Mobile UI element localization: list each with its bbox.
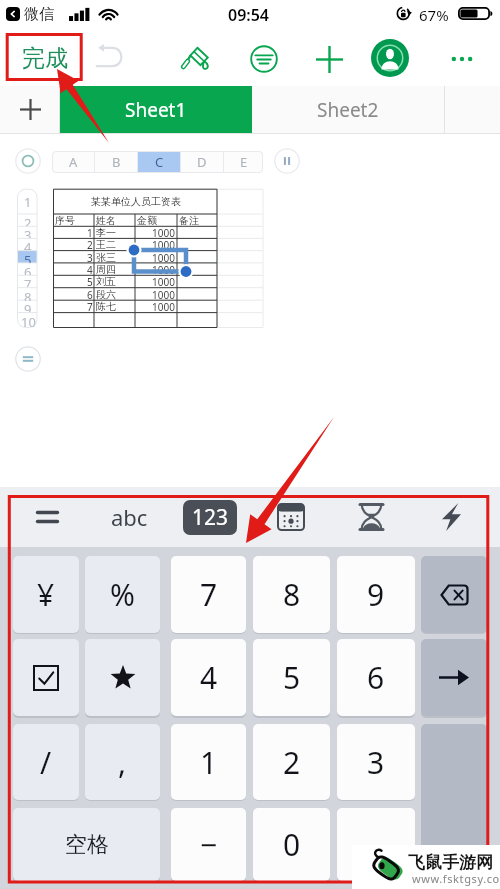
button[interactable]: 完成 (12, 38, 77, 78)
staticText: 9 (24, 300, 32, 312)
staticText: 序号 (55, 214, 75, 226)
button[interactable]: 7 (171, 556, 246, 633)
button[interactable] (85, 639, 160, 716)
staticText: Sheet1 (125, 97, 187, 123)
staticText: 姓名 (96, 214, 116, 226)
staticText: 1000 (152, 238, 175, 250)
button[interactable]: Formula (15, 346, 41, 372)
button[interactable]: 空格 (13, 808, 160, 881)
button[interactable]: 123 (183, 500, 237, 535)
staticText: 67% (419, 5, 449, 25)
button[interactable]: 8 (253, 556, 330, 633)
button[interactable]: Record (15, 148, 41, 174)
staticText: 3 (87, 251, 93, 263)
staticText: − (200, 824, 218, 865)
button[interactable]: A (52, 151, 94, 173)
staticText: 金额 (137, 214, 157, 226)
staticText: 2 (24, 214, 32, 226)
button[interactable]: Sheet1 (60, 86, 252, 134)
staticText: 1000 (152, 263, 175, 275)
staticText: 1000 (152, 300, 175, 312)
button[interactable]: Format painter (178, 41, 214, 77)
staticText: 6 (87, 288, 93, 301)
button[interactable] (13, 639, 79, 716)
button[interactable]: Numeric pad (265, 494, 317, 540)
staticText: ¥ (37, 574, 55, 615)
button[interactable]: / (13, 724, 79, 800)
button[interactable]: More options (445, 42, 479, 76)
button[interactable] (421, 639, 487, 716)
staticText: 1000 (152, 288, 175, 301)
staticText: 李一 (96, 226, 116, 238)
staticText: 备注 (179, 214, 199, 226)
button[interactable]: Pause (274, 148, 300, 174)
button[interactable]: Quick actions (428, 494, 474, 540)
staticText: 8 (24, 288, 32, 301)
staticText: 3 (24, 226, 32, 238)
staticText: 6 (24, 263, 32, 275)
staticText: 陈七 (96, 300, 116, 312)
button[interactable]: 5 (253, 639, 330, 716)
staticText: 8 (283, 574, 301, 615)
staticText: 空格 (65, 831, 109, 859)
staticText: % (110, 574, 135, 615)
button[interactable]: Sheet2 (252, 86, 444, 134)
staticText: 10 (21, 313, 36, 328)
button[interactable]: − (171, 808, 246, 881)
button[interactable] (421, 724, 487, 881)
staticText: 9 (367, 574, 385, 615)
button[interactable]: . (337, 808, 415, 881)
button[interactable]: 2 (253, 724, 330, 800)
button[interactable]: C (138, 151, 180, 173)
staticText: 1 (200, 742, 218, 783)
staticText: 5 (283, 657, 301, 698)
button[interactable]: ¥ (13, 556, 79, 633)
staticText: 刘五 (96, 275, 116, 287)
staticText: 微信 (24, 5, 54, 24)
staticText: 2 (283, 742, 301, 783)
button[interactable]: 1 (171, 724, 246, 800)
staticText: C (155, 153, 164, 171)
staticText: 1 (87, 226, 93, 238)
button[interactable]: Add sheet (14, 93, 46, 125)
staticText: 4 (200, 657, 218, 698)
staticText: 1000 (152, 275, 175, 287)
button[interactable]: 6 (337, 639, 415, 716)
button[interactable] (421, 556, 487, 633)
staticText: 王二 (96, 238, 116, 250)
staticText: 123 (192, 503, 229, 532)
staticText: 7 (24, 275, 32, 287)
button[interactable]: , (85, 724, 160, 800)
button[interactable]: 3 (337, 724, 415, 800)
button[interactable]: Keyboard menu (28, 497, 66, 537)
staticText: 周四 (96, 263, 116, 275)
button[interactable]: 4 (171, 639, 246, 716)
staticText: 7 (200, 574, 218, 615)
button[interactable]: Recent (348, 494, 394, 540)
staticText: , (118, 742, 127, 783)
button[interactable]: Account (371, 39, 409, 77)
staticText: 3 (367, 742, 385, 783)
button[interactable]: Insert (311, 41, 347, 77)
button[interactable]: B (95, 151, 137, 173)
staticText: 段六 (96, 288, 116, 301)
staticText: 张三 (96, 251, 116, 263)
button[interactable]: E (224, 151, 263, 173)
staticText: E (240, 153, 248, 171)
staticText: 1000 (152, 251, 175, 263)
other: Back (6, 7, 20, 21)
button[interactable]: % (85, 556, 160, 633)
staticText: A (69, 153, 78, 171)
button[interactable]: Text alignment (246, 41, 282, 77)
staticText: D (197, 153, 207, 171)
button[interactable]: D (181, 151, 223, 173)
button[interactable]: abc (104, 498, 155, 536)
staticText: 6 (367, 657, 385, 698)
staticText: 某某单位人员工资表 (91, 195, 181, 208)
staticText: B (112, 153, 121, 171)
button[interactable]: 9 (337, 556, 415, 633)
staticText: Sheet2 (317, 97, 379, 123)
button[interactable]: 0 (253, 808, 330, 881)
staticText: 5 (24, 251, 32, 263)
button[interactable]: Undo (89, 36, 129, 76)
